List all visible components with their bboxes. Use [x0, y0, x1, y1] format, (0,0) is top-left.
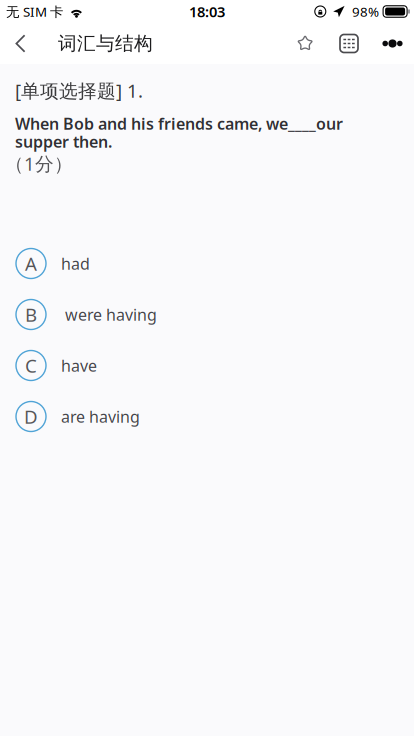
staticText: C: [25, 353, 37, 378]
button[interactable]: D: [0, 391, 414, 442]
staticText: had: [61, 253, 90, 274]
staticText: 98%: [352, 3, 379, 20]
staticText: A: [25, 251, 37, 276]
staticText: were having: [61, 304, 157, 325]
button[interactable]: Question list: [327, 23, 371, 64]
button[interactable]: C: [0, 340, 414, 391]
staticText: supper then.: [15, 131, 112, 152]
staticText: D: [24, 404, 38, 429]
staticText: 词汇与结构: [58, 32, 153, 55]
button[interactable]: More: [371, 23, 414, 64]
staticText: When Bob and his friends came, we____our: [15, 113, 343, 134]
button[interactable]: Favourite: [283, 23, 327, 64]
staticText: are having: [61, 406, 140, 427]
button[interactable]: Back: [0, 23, 41, 64]
staticText: have: [61, 355, 97, 376]
staticText: 无 SIM 卡: [6, 3, 63, 20]
staticText: 18:03: [189, 2, 225, 21]
staticText: （1分）: [5, 151, 73, 176]
staticText: B: [25, 302, 37, 327]
staticText: [单项选择题] 1.: [15, 78, 143, 103]
button[interactable]: A: [0, 238, 414, 289]
button[interactable]: B: [0, 289, 414, 340]
